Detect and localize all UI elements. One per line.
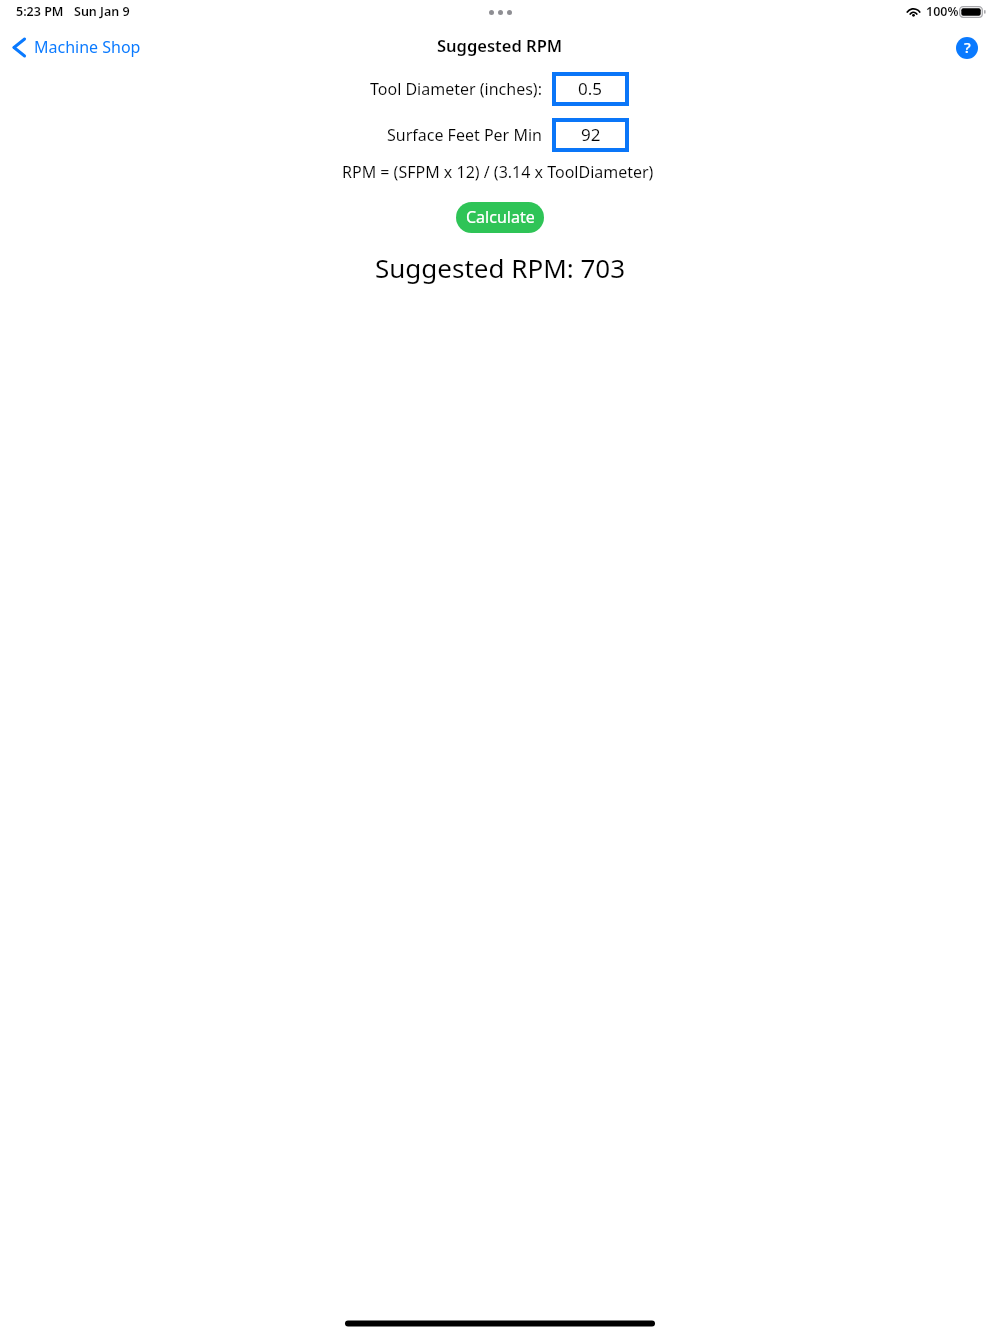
staticText: 100%: [926, 3, 959, 20]
button[interactable]: 92: [552, 118, 629, 152]
button[interactable]: Help: [956, 37, 978, 59]
button[interactable]: 0.5: [552, 72, 629, 106]
staticText: Tool Diameter (inches):: [370, 78, 542, 100]
staticText: RPM = (SFPM x 12) / (3.14 x ToolDiameter…: [342, 161, 654, 183]
staticText: 5:23 PM: [16, 3, 64, 20]
staticText: Machine Shop: [34, 36, 141, 58]
staticText: 0.5: [578, 77, 603, 100]
staticText: Calculate: [466, 206, 535, 228]
button[interactable]: Calculate: [456, 202, 544, 233]
staticText: Surface Feet Per Min: [387, 124, 542, 146]
staticText: ?: [964, 37, 971, 57]
staticText: 92: [581, 123, 601, 146]
button[interactable]: Machine Shop: [8, 30, 141, 64]
staticText: Suggested RPM: [437, 34, 563, 56]
staticText: Suggested RPM: 703: [375, 250, 626, 285]
staticText: Sun Jan 9: [74, 3, 130, 20]
